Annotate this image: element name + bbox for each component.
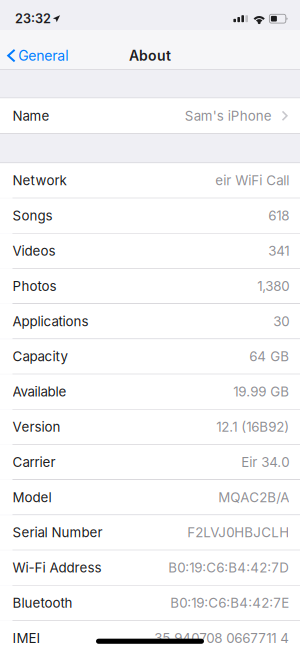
staticText: eir WiFi Call <box>215 172 289 188</box>
staticText: 19.99 GB <box>233 384 289 400</box>
staticText: Name <box>12 108 49 124</box>
staticText: 35 940708 0667711 4 <box>154 630 289 646</box>
staticText: 64 GB <box>249 348 289 364</box>
staticText: 12.1 (16B92) <box>216 419 289 435</box>
staticText: IMEI <box>12 630 40 646</box>
staticText: Videos <box>12 243 55 259</box>
staticText: Photos <box>12 278 56 294</box>
staticText: 30 <box>273 313 289 329</box>
staticText: Sam's iPhone <box>185 108 272 124</box>
staticText: Bluetooth <box>12 595 72 611</box>
staticText: Model <box>12 489 51 505</box>
staticText: 618 <box>268 208 289 224</box>
staticText: Songs <box>12 208 52 224</box>
staticText: About <box>129 47 171 64</box>
staticText: Network <box>12 172 66 188</box>
staticText: F2LVJ0HBJCLH <box>187 524 289 540</box>
button[interactable]: Name <box>0 98 300 133</box>
staticText: Version <box>12 419 60 435</box>
staticText: Serial Number <box>12 524 102 540</box>
staticText: 341 <box>268 243 289 259</box>
button[interactable]: General <box>0 35 78 64</box>
staticText: 1,380 <box>257 278 289 294</box>
staticText: B0:19:C6:B4:42:7D <box>168 560 289 576</box>
staticText: Carrier <box>12 454 55 470</box>
staticText: 23:32 <box>15 11 51 26</box>
staticText: Eir 34.0 <box>241 454 289 470</box>
staticText: Capacity <box>12 348 67 364</box>
staticText: Wi-Fi Address <box>12 560 101 576</box>
staticText: Available <box>12 384 66 400</box>
staticText: MQAC2B/A <box>218 489 289 505</box>
staticText: B0:19:C6:B4:42:7E <box>170 595 289 611</box>
staticText: General <box>18 47 68 64</box>
staticText: Applications <box>12 313 88 329</box>
